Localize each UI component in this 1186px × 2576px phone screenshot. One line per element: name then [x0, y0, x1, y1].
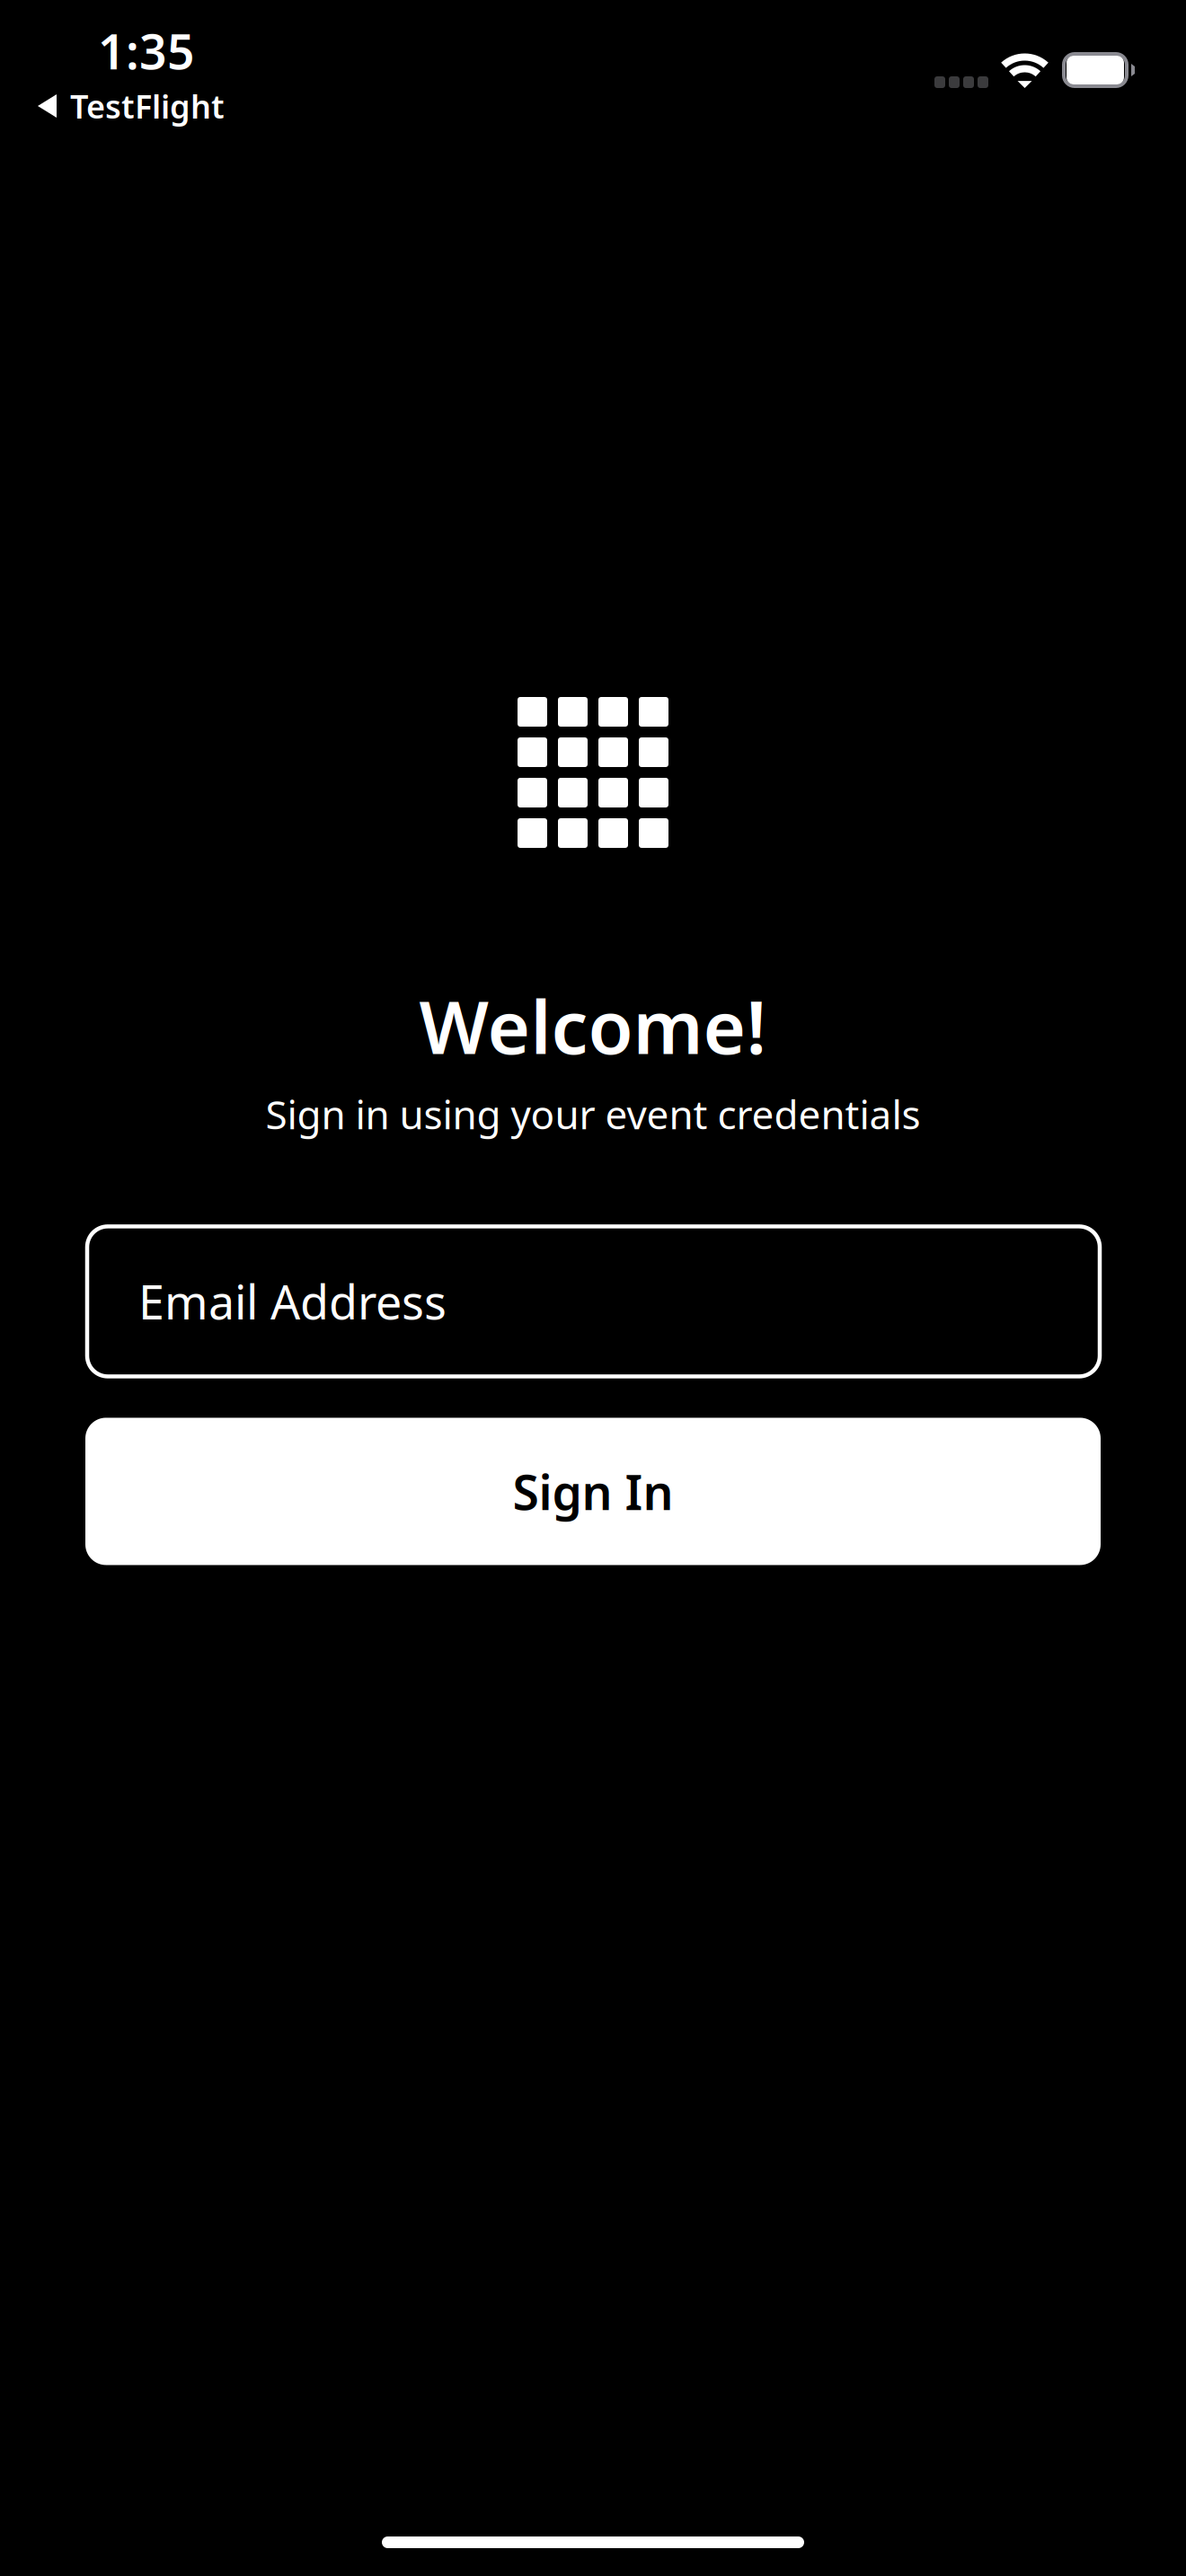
button[interactable]: Back to TestFlight [37, 90, 225, 122]
staticText: Email Address [138, 1270, 447, 1332]
staticText: TestFlight [70, 85, 225, 127]
staticText: 1:35 [98, 19, 195, 83]
staticText: Welcome! [419, 977, 767, 1074]
staticText: Sign in using your event credentials [266, 1088, 920, 1140]
staticText: Sign In [513, 1460, 673, 1523]
button[interactable]: Sign In [85, 1418, 1101, 1565]
button[interactable]: Email Address [87, 1226, 1100, 1376]
